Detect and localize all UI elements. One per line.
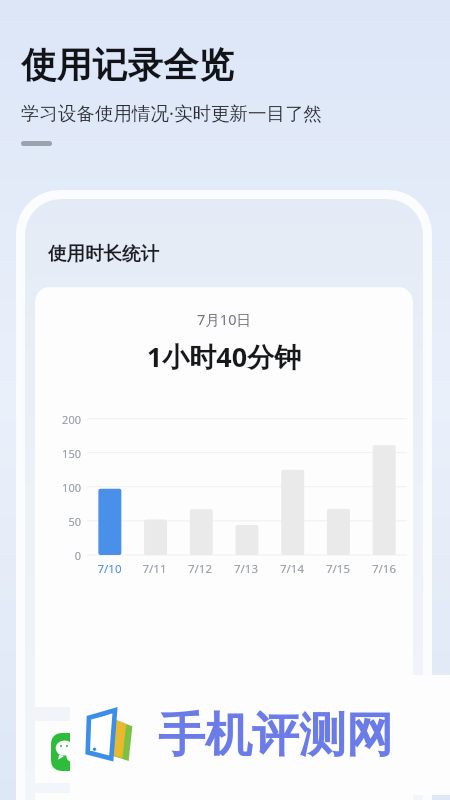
staticText: 100 (53, 480, 81, 495)
other: Details (373, 740, 397, 764)
staticText: 0 (53, 548, 81, 563)
staticText: 手机评测网 (158, 706, 393, 765)
staticText: 7/16 (361, 561, 407, 577)
staticText: 7/12 (177, 561, 223, 577)
staticText: 学习设备使用情况·实时更新一目了然 (21, 100, 322, 125)
staticText: 7/11 (132, 561, 177, 577)
staticText: 7月10日 (35, 309, 413, 329)
staticText: 使用记录全览 (21, 43, 234, 87)
staticText: 200 (53, 412, 81, 427)
staticText: 7/15 (315, 561, 361, 577)
staticText: 50 (53, 514, 81, 529)
staticText: 使用时长统计 (48, 242, 159, 265)
staticText: 1小时40分钟 (35, 338, 413, 375)
staticText: 150 (53, 446, 81, 461)
button[interactable]: 微信 (35, 721, 413, 783)
staticText: 7/13 (223, 561, 269, 577)
staticText: 7/10 (87, 561, 132, 577)
staticText: 微信 (101, 731, 131, 750)
staticText: 7/14 (269, 561, 315, 577)
